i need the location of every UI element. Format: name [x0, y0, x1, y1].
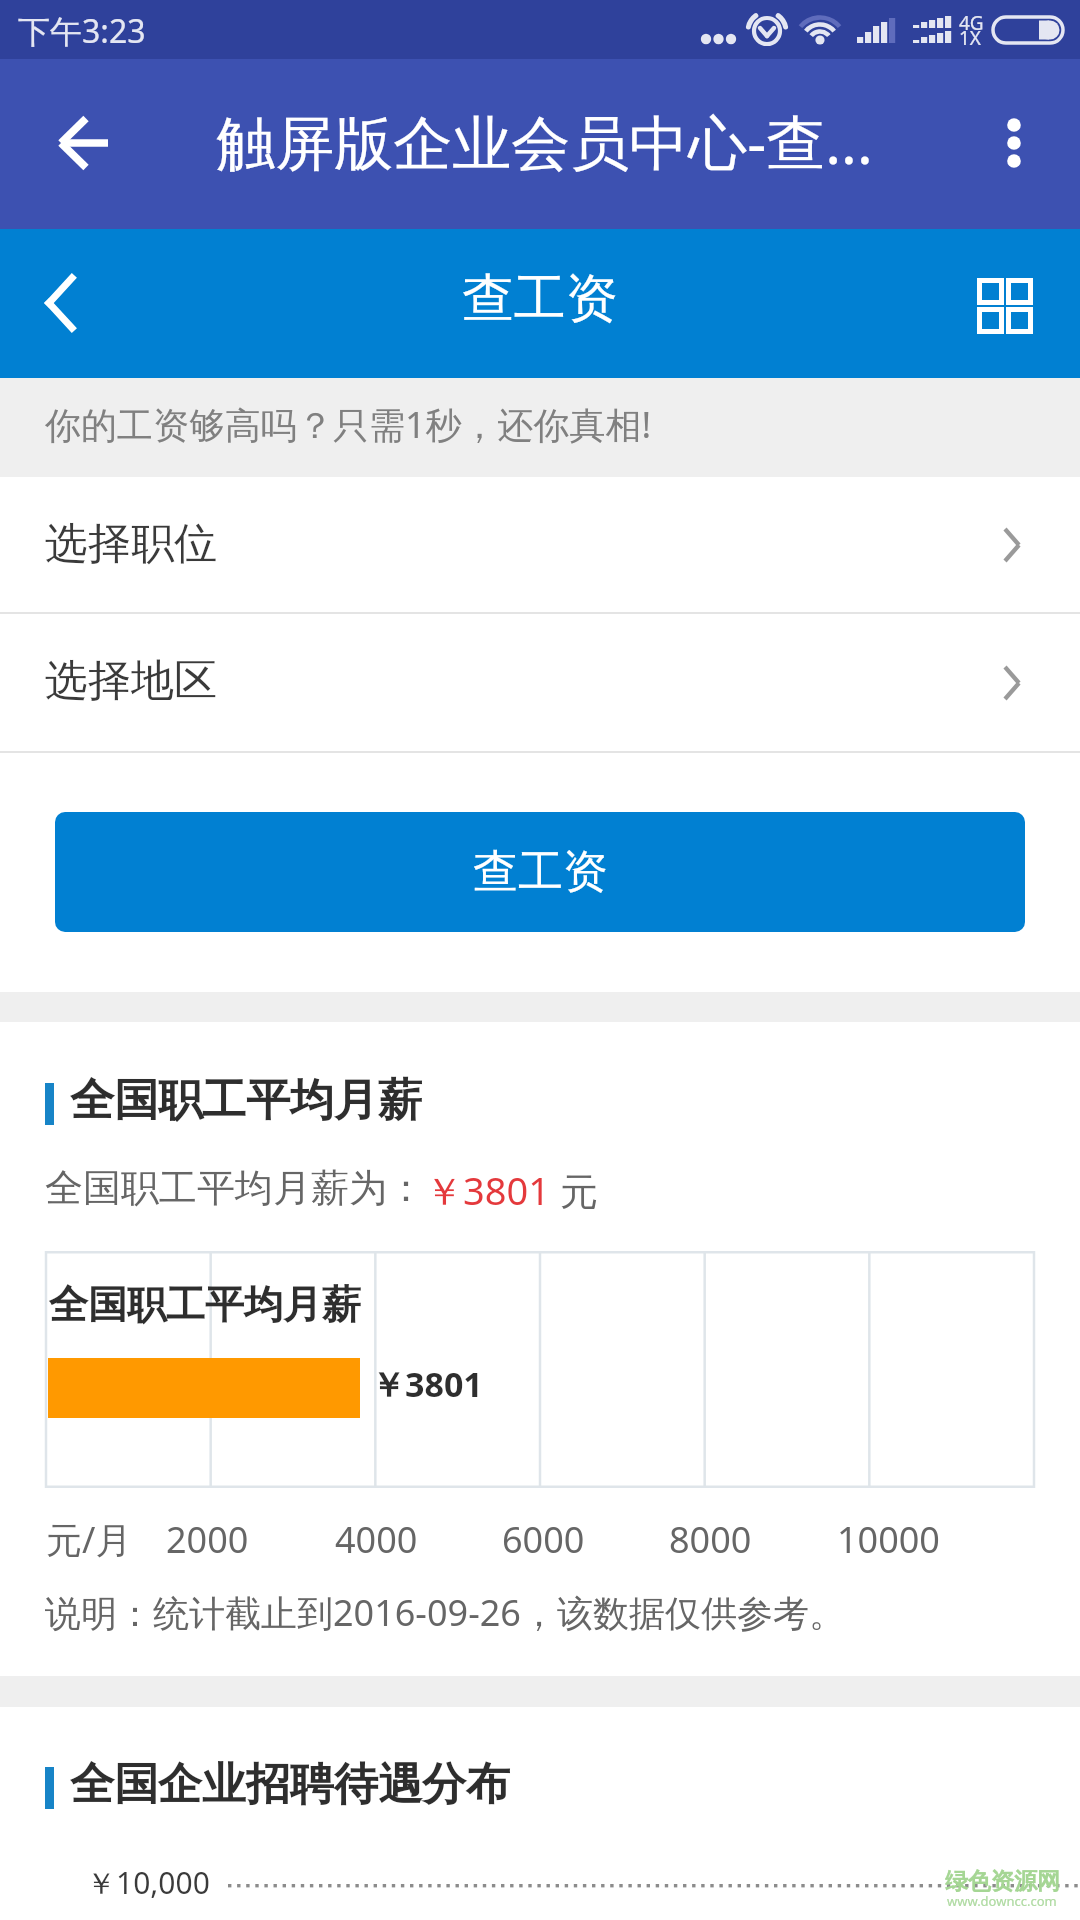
button[interactable]: 选择职位	[0, 477, 1080, 612]
staticText: ￥3801	[371, 1361, 483, 1407]
staticText: www.downcc.com	[947, 1892, 1057, 1910]
staticText: 4G	[959, 10, 984, 36]
staticText: 选择职位	[45, 517, 217, 571]
staticText: 下午3:23	[18, 9, 146, 53]
button[interactable]: Back	[0, 229, 140, 378]
button[interactable]: 选择地区	[0, 614, 1080, 751]
staticText: 查工资	[462, 266, 618, 332]
button[interactable]: Back	[0, 59, 168, 229]
staticText: 2000	[166, 1515, 249, 1564]
staticText: 1X	[959, 25, 982, 51]
staticText: 说明：统计截止到2016-09-26，该数据仅供参考。	[45, 1588, 845, 1637]
staticText: 全国职工平均月薪	[70, 1073, 422, 1128]
staticText: 绿色资源网	[945, 1867, 1060, 1896]
staticText: 全国企业招聘待遇分布	[70, 1757, 510, 1812]
staticText: ￥10,000	[86, 1862, 210, 1903]
staticText: ￥3801	[425, 1164, 550, 1216]
staticText: 6000	[502, 1515, 585, 1564]
staticText: 8000	[669, 1515, 752, 1564]
staticText: 全国职工平均月薪为：	[45, 1164, 425, 1212]
staticText: 元	[550, 1164, 598, 1216]
staticText: 4000	[335, 1515, 418, 1564]
staticText: 你的工资够高吗？只需1秒，还你真相!	[45, 400, 652, 449]
button[interactable]: More options	[970, 59, 1080, 229]
staticText: 元/月	[46, 1515, 132, 1564]
staticText: 10000	[837, 1515, 940, 1564]
staticText: 触屏版企业会员中心-查...	[216, 101, 873, 182]
staticText: 全国职工平均月薪	[49, 1280, 361, 1329]
staticText: 查工资	[473, 844, 608, 901]
button[interactable]: 查工资	[55, 812, 1025, 932]
button[interactable]: Grid menu	[960, 229, 1080, 378]
staticText: 选择地区	[45, 654, 217, 708]
